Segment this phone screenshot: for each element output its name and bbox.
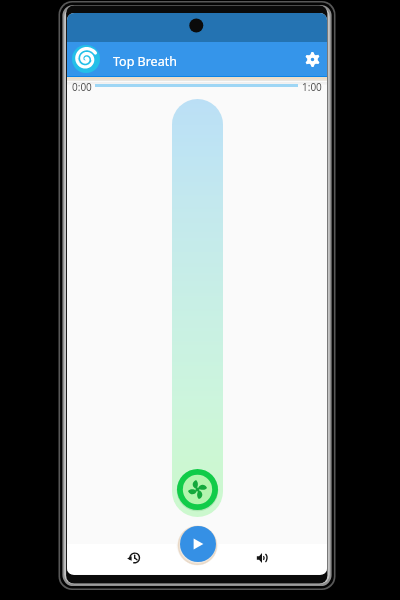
staticText: 0:00 bbox=[72, 80, 92, 94]
button[interactable]: Volume bbox=[246, 543, 278, 573]
staticText: Top Breath bbox=[113, 53, 177, 70]
button[interactable]: Breath marker bbox=[177, 469, 218, 510]
staticText: 1:00 bbox=[302, 80, 322, 94]
button[interactable]: History bbox=[117, 543, 149, 573]
button[interactable]: Play bbox=[180, 526, 216, 562]
button[interactable]: Settings bbox=[299, 46, 325, 72]
